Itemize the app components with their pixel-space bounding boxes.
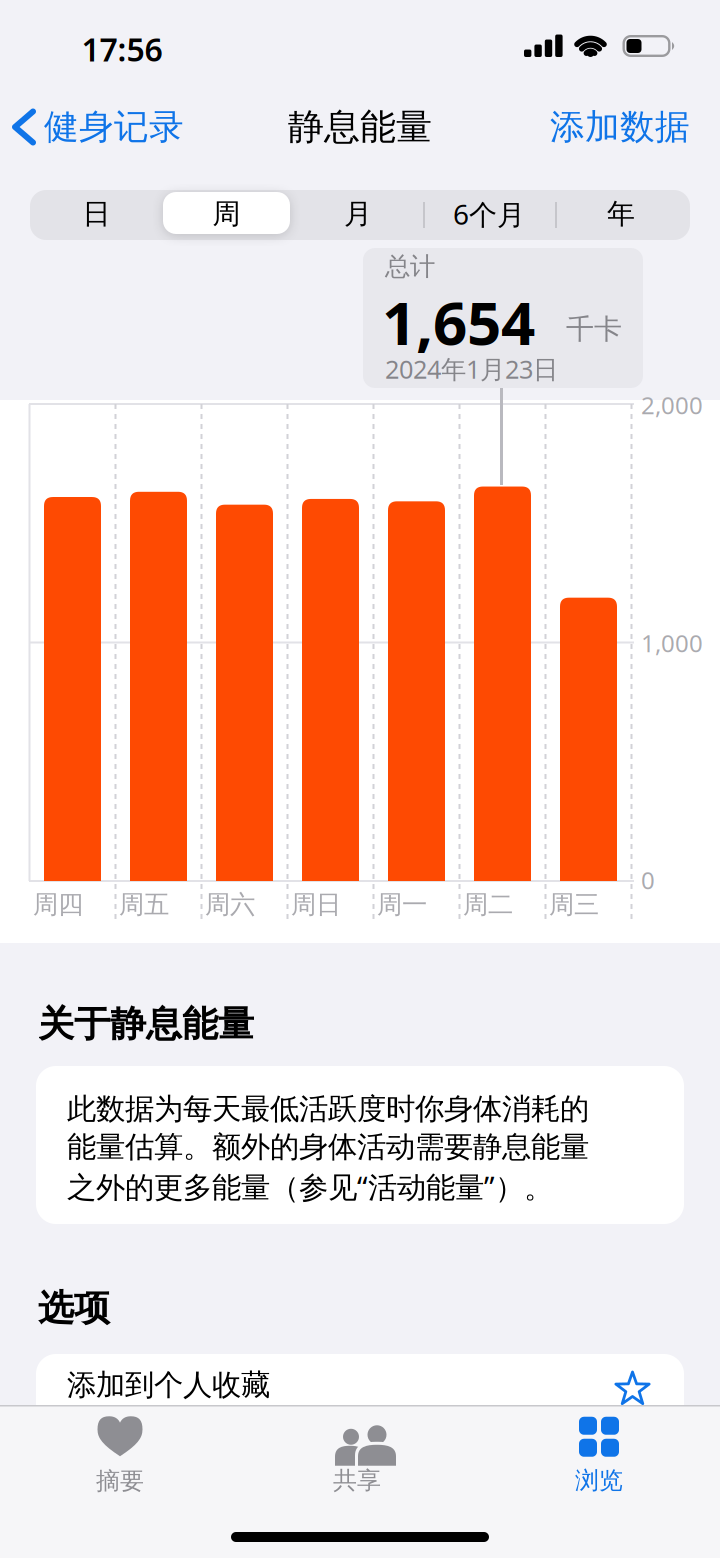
button[interactable]: 6个月 bbox=[424, 189, 554, 239]
staticText: 17:56 bbox=[81, 28, 162, 70]
staticText: 摘要 bbox=[96, 1466, 144, 1496]
staticText: 此数据为每天最低活跃度时你身体消耗的 bbox=[67, 1091, 589, 1127]
button[interactable]: 摘要 bbox=[30, 1412, 210, 1500]
staticText: 周五 bbox=[119, 889, 169, 920]
staticText: 之外的更多能量（参见“活动能量”）。 bbox=[67, 1167, 553, 1206]
button[interactable]: 年 bbox=[556, 189, 686, 239]
staticText: 关于静息能量 bbox=[38, 1002, 254, 1046]
staticText: 周六 bbox=[205, 889, 255, 920]
staticText: 总计 bbox=[385, 251, 435, 282]
staticText: 年 bbox=[607, 197, 635, 231]
staticText: 能量估算。额外的身体活动需要静息能量 bbox=[67, 1129, 589, 1165]
button[interactable]: 添加到个人收藏 bbox=[36, 1354, 684, 1444]
staticText: 静息能量 bbox=[288, 105, 432, 149]
staticText: 周二 bbox=[463, 889, 513, 920]
staticText: 6个月 bbox=[453, 195, 525, 233]
staticText: 千卡 bbox=[566, 312, 622, 346]
staticText: 1,654 bbox=[382, 282, 535, 362]
button[interactable]: 周 bbox=[161, 189, 291, 239]
staticText: 共享 bbox=[333, 1466, 381, 1495]
staticText: 添加到个人收藏 bbox=[67, 1367, 270, 1403]
staticText: 周一 bbox=[377, 889, 427, 920]
staticText: 1,000 bbox=[641, 627, 703, 659]
staticText: 周 bbox=[212, 197, 240, 231]
staticText: 2024年1月23日 bbox=[385, 352, 558, 386]
staticText: 日 bbox=[82, 197, 110, 231]
staticText: 添加数据 bbox=[550, 106, 690, 148]
staticText: 0 bbox=[641, 864, 655, 896]
button[interactable]: 健身记录 bbox=[15, 105, 184, 149]
staticText: 浏览 bbox=[575, 1466, 623, 1495]
button[interactable]: 添加数据 bbox=[535, 105, 705, 149]
staticText: 周三 bbox=[549, 889, 599, 920]
button[interactable]: 日 bbox=[31, 189, 161, 239]
button[interactable]: 共享 bbox=[267, 1412, 447, 1500]
staticText: 健身记录 bbox=[44, 106, 184, 148]
staticText: 2,000 bbox=[641, 389, 703, 421]
staticText: 月 bbox=[344, 197, 372, 231]
button[interactable]: 月 bbox=[293, 189, 423, 239]
button[interactable]: 浏览 bbox=[509, 1412, 689, 1500]
staticText: 选项 bbox=[38, 1286, 110, 1330]
staticText: 周四 bbox=[33, 889, 83, 920]
staticText: 周日 bbox=[291, 889, 341, 920]
